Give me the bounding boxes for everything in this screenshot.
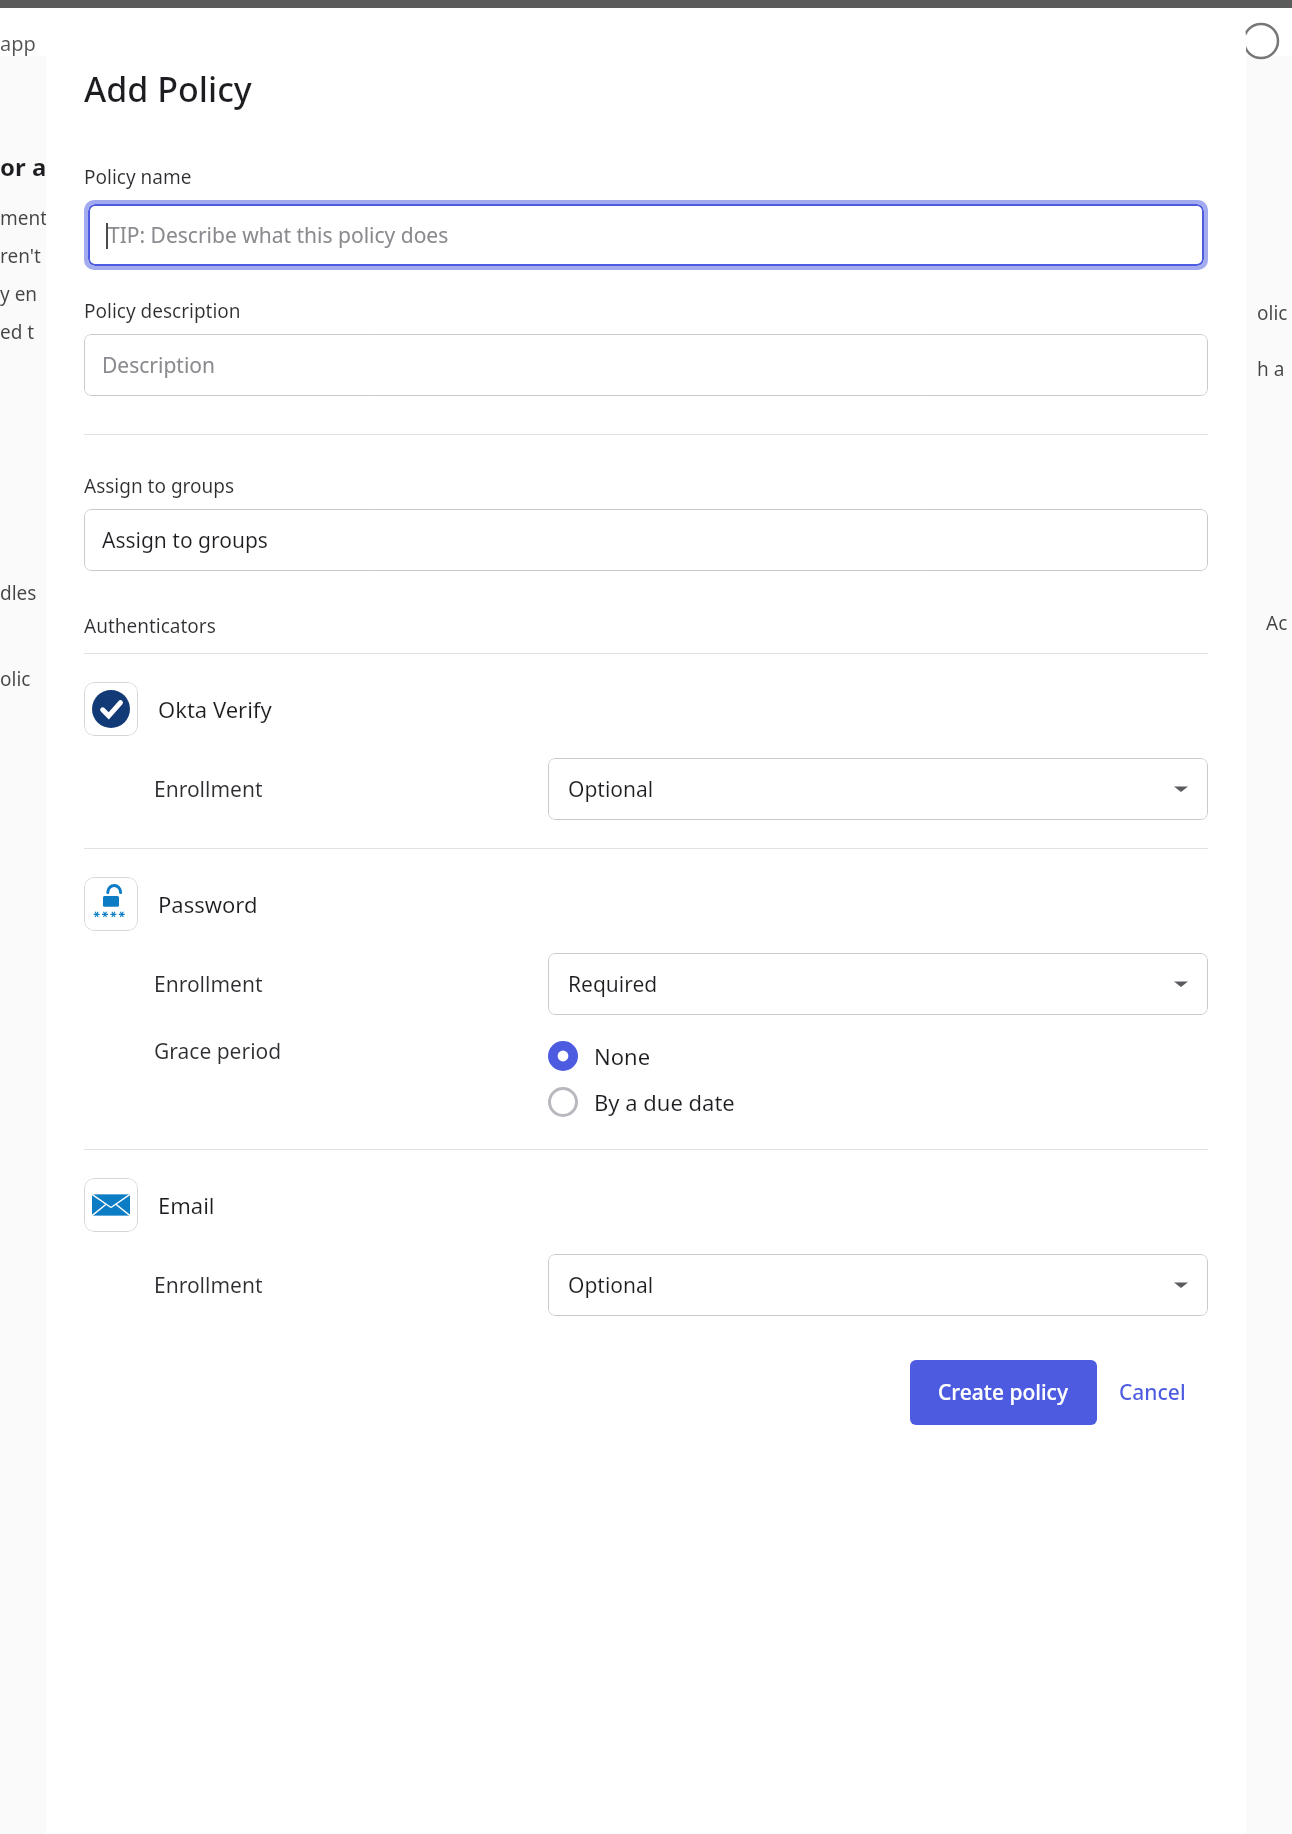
button[interactable]: Create policy: [910, 1360, 1097, 1425]
staticText: TIP: Describe what this policy does: [108, 221, 449, 250]
button[interactable]: Required: [548, 953, 1208, 1015]
staticText: olic: [0, 666, 31, 692]
staticText: ren't: [0, 243, 41, 269]
staticText: Add Policy: [84, 66, 252, 112]
staticText: y en: [0, 281, 38, 307]
button[interactable]: TIP: Describe what this policy does: [84, 200, 1208, 270]
staticText: Assign to groups: [84, 473, 235, 499]
staticText: Optional: [568, 1271, 654, 1300]
button[interactable]: Optional: [548, 1254, 1208, 1316]
staticText: Policy name: [84, 164, 192, 190]
staticText: Grace period: [154, 1037, 282, 1066]
staticText: ment: [0, 205, 48, 231]
staticText: Enrollment: [154, 775, 263, 804]
button[interactable]: Assign to groups: [84, 509, 1208, 571]
staticText: Password: [158, 889, 258, 919]
staticText: Policy description: [84, 298, 241, 324]
button[interactable]: None: [548, 1037, 651, 1075]
staticText: h a: [1257, 356, 1285, 382]
staticText: app: [0, 30, 36, 57]
staticText: Enrollment: [154, 970, 263, 999]
button[interactable]: Description: [84, 334, 1208, 396]
staticText: Create policy: [938, 1378, 1069, 1407]
staticText: None: [594, 1041, 651, 1071]
staticText: By a due date: [594, 1087, 735, 1117]
staticText: Required: [568, 970, 658, 999]
staticText: Authenticators: [84, 613, 216, 639]
staticText: dles: [0, 580, 37, 606]
staticText: Ac: [1266, 610, 1288, 636]
staticText: Cancel: [1119, 1378, 1186, 1407]
staticText: or a: [0, 150, 47, 183]
staticText: Optional: [568, 775, 654, 804]
button[interactable]: Cancel: [1097, 1360, 1208, 1425]
staticText: Assign to groups: [102, 526, 268, 555]
staticText: Enrollment: [154, 1271, 263, 1300]
staticText: ed t: [0, 319, 35, 345]
staticText: Okta Verify: [158, 694, 272, 724]
button[interactable]: Optional: [548, 758, 1208, 820]
staticText: Description: [102, 351, 216, 380]
staticText: Email: [158, 1190, 215, 1220]
staticText: olic: [1257, 300, 1288, 326]
button[interactable]: By a due date: [548, 1083, 735, 1121]
